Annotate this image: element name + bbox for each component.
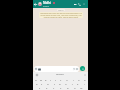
staticText: m: [80, 86, 83, 89]
button[interactable]: More options: [82, 0, 86, 8]
staticText: j: [72, 82, 73, 85]
staticText: s: [41, 82, 43, 85]
staticText: w: [40, 78, 42, 81]
button[interactable]: g: [57, 81, 63, 85]
staticText: p: [84, 78, 86, 81]
button[interactable]: x: [43, 85, 50, 89]
button[interactable]: f: [51, 81, 57, 85]
button[interactable]: w: [38, 77, 43, 81]
button[interactable]: v: [57, 85, 64, 89]
button[interactable]: Back: [33, 0, 38, 8]
button[interactable]: Keyboard settings: [83, 73, 86, 76]
button[interactable]: m: [78, 85, 85, 89]
staticText: n: [74, 86, 76, 89]
button[interactable]: n: [71, 85, 78, 89]
button[interactable]: Messages and calls are end-to-end encryp…: [39, 12, 83, 18]
staticText: q: [35, 78, 37, 81]
staticText: d: [47, 82, 49, 85]
button[interactable]: q: [33, 77, 38, 81]
staticText: r: [50, 78, 52, 81]
staticText: x: [46, 86, 48, 89]
staticText: TODAY: [58, 9, 64, 11]
staticText: h: [65, 82, 67, 85]
staticText: b: [67, 86, 69, 89]
staticText: c: [53, 86, 55, 89]
button[interactable]: k: [75, 81, 81, 85]
staticText: Messages and calls are end-to-end encryp…: [40, 12, 82, 18]
staticText: l: [84, 82, 85, 85]
staticText: y: [60, 78, 62, 81]
staticText: Gboard: [56, 73, 64, 76]
staticText: f: [54, 82, 55, 85]
button[interactable]: y: [58, 77, 64, 81]
staticText: online: [43, 5, 49, 8]
button[interactable]: Call: [77, 0, 81, 8]
staticText: a: [36, 82, 38, 85]
staticText: i: [73, 78, 74, 81]
button[interactable]: d: [45, 81, 51, 85]
button[interactable]: b: [64, 85, 71, 89]
button[interactable]: j: [69, 81, 75, 85]
staticText: v: [60, 86, 62, 89]
staticText: t: [55, 78, 56, 81]
button[interactable]: i: [70, 77, 76, 81]
staticText: g: [59, 82, 61, 85]
button[interactable]: l: [81, 81, 87, 85]
button[interactable]: Emoji: [35, 73, 38, 76]
staticText: k: [77, 82, 79, 85]
staticText: o: [78, 78, 80, 81]
button[interactable]: r: [48, 77, 53, 81]
button[interactable]: z: [36, 85, 43, 89]
staticText: z: [39, 86, 41, 89]
button[interactable]: c: [50, 85, 57, 89]
button[interactable]: p: [82, 77, 88, 81]
button[interactable]: a: [34, 81, 39, 85]
staticText: Nidhi: [43, 1, 52, 5]
button[interactable]: o: [76, 77, 82, 81]
button[interactable]: t: [53, 77, 58, 81]
staticText: e: [45, 78, 47, 81]
button[interactable]: Video call: [73, 0, 77, 8]
button[interactable]: Voice message: [80, 66, 85, 71]
staticText: u: [66, 78, 68, 81]
button[interactable]: s: [39, 81, 45, 85]
button[interactable]: [34, 66, 79, 72]
button[interactable]: h: [63, 81, 69, 85]
button[interactable]: e: [43, 77, 48, 81]
button[interactable]: u: [64, 77, 70, 81]
